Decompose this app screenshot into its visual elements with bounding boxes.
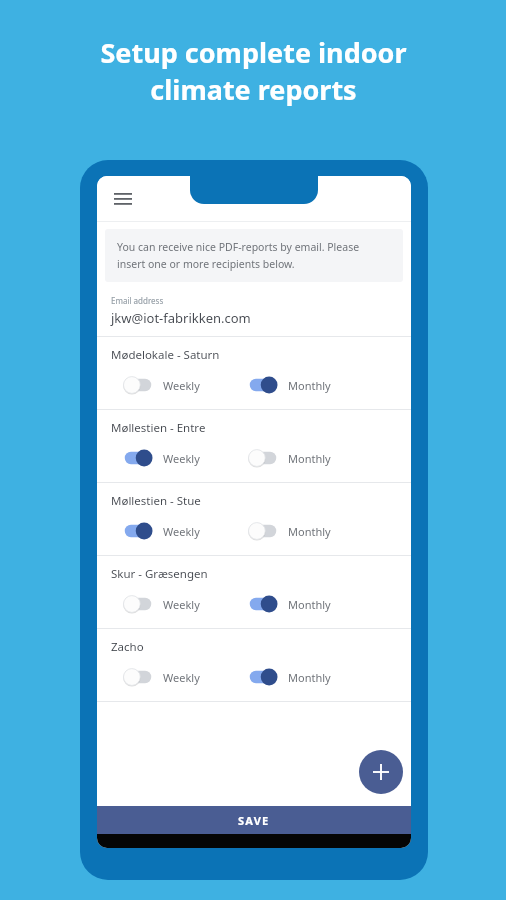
staticText: Monthly <box>288 524 331 539</box>
button[interactable]: Monthly <box>246 521 331 541</box>
staticText: Monthly <box>288 451 331 466</box>
staticText: Weekly <box>163 597 200 612</box>
button[interactable]: Weekly <box>121 521 200 541</box>
staticText: Zacho <box>111 639 144 655</box>
staticText: Monthly <box>288 670 331 685</box>
staticText: Monthly <box>288 597 331 612</box>
staticText: SAVE <box>238 813 270 828</box>
button[interactable]: Weekly <box>121 375 200 395</box>
staticText: Møllestien - Stue <box>111 493 201 509</box>
button[interactable]: Monthly <box>246 667 331 687</box>
staticText: Møllestien - Entre <box>111 420 206 436</box>
staticText: Monthly <box>288 378 331 393</box>
button[interactable]: Add recipient <box>359 750 403 794</box>
button[interactable]: Monthly <box>246 448 331 468</box>
button[interactable]: Weekly <box>121 448 200 468</box>
button[interactable]: SAVE <box>97 806 411 834</box>
staticText: Setup complete indoor climate reports <box>100 34 407 108</box>
staticText: Weekly <box>163 670 200 685</box>
staticText: You can receive nice PDF-reports by emai… <box>117 240 360 271</box>
staticText: Weekly <box>163 451 200 466</box>
button[interactable]: Monthly <box>246 375 331 395</box>
button[interactable]: Menu <box>103 179 143 219</box>
staticText: Mødelokale - Saturn <box>111 347 220 363</box>
staticText: Weekly <box>163 378 200 393</box>
button[interactable]: Weekly <box>121 667 200 687</box>
staticText: Weekly <box>163 524 200 539</box>
staticText: jkw@iot-fabrikken.com <box>111 309 251 327</box>
staticText: Email address <box>111 295 164 306</box>
staticText: Skur - Græsengen <box>111 566 208 582</box>
button[interactable]: Weekly <box>121 594 200 614</box>
button[interactable]: Monthly <box>246 594 331 614</box>
